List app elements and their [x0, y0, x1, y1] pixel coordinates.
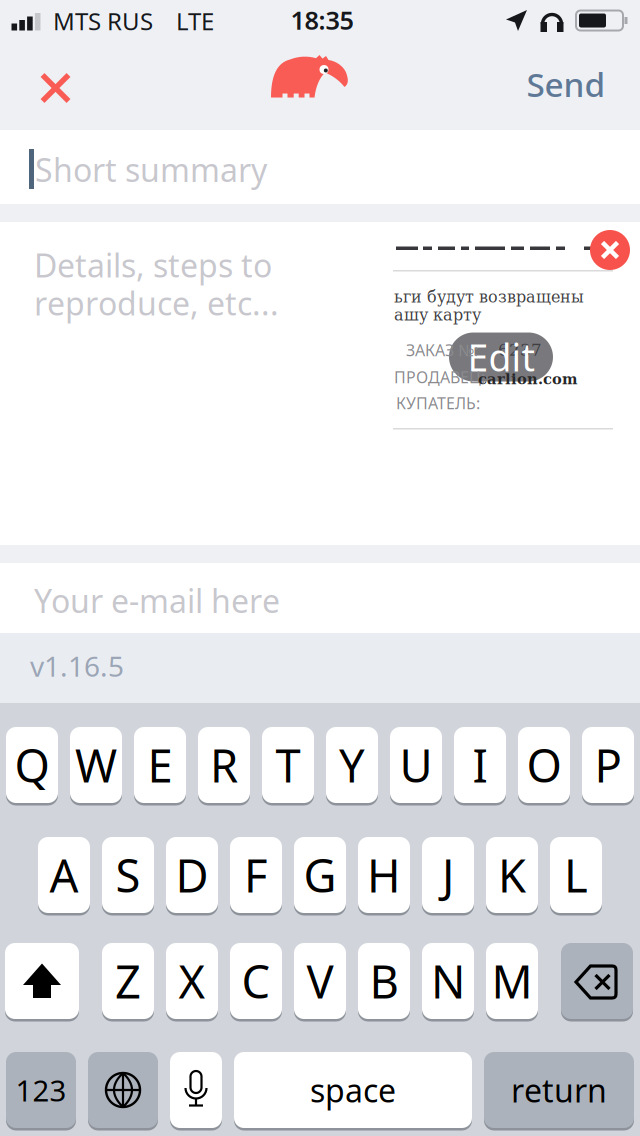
- staticText: F: [244, 845, 268, 905]
- staticText: E: [147, 735, 172, 795]
- button[interactable]: K: [486, 837, 538, 913]
- button[interactable]: E: [134, 727, 186, 803]
- button[interactable]: N: [422, 943, 474, 1019]
- button[interactable]: A: [38, 837, 90, 913]
- button[interactable]: Y: [326, 727, 378, 803]
- staticText: 123: [15, 1070, 66, 1109]
- button[interactable]: Z: [102, 943, 154, 1019]
- button[interactable]: Shift: [5, 943, 79, 1019]
- staticText: B: [369, 951, 398, 1011]
- staticText: Details, steps to: [34, 244, 272, 286]
- button[interactable]: Delete: [561, 943, 633, 1019]
- button[interactable]: V: [294, 943, 346, 1019]
- staticText: 6237: [498, 340, 542, 360]
- staticText: ашу карту: [394, 306, 481, 324]
- staticText: ЗАКАЗ №:: [406, 339, 478, 361]
- staticText: ПРОДАВЕЦ:: [394, 366, 485, 388]
- button[interactable]: I: [454, 727, 506, 803]
- button[interactable]: Short summary: [0, 130, 640, 204]
- staticText: S: [115, 845, 140, 905]
- button[interactable]: space: [234, 1052, 472, 1128]
- staticText: V: [306, 951, 333, 1011]
- staticText: space: [310, 1069, 396, 1111]
- staticText: L: [564, 845, 588, 905]
- staticText: R: [210, 735, 238, 795]
- staticText: N: [431, 951, 465, 1011]
- button[interactable]: S: [102, 837, 154, 913]
- staticText: G: [303, 845, 336, 905]
- staticText: Short summary: [35, 148, 267, 191]
- button[interactable]: O: [518, 727, 570, 803]
- button[interactable]: D: [166, 837, 218, 913]
- button[interactable]: Edit: [449, 332, 553, 381]
- button[interactable]: G: [294, 837, 346, 913]
- button[interactable]: return: [484, 1052, 634, 1128]
- button[interactable]: L: [550, 837, 602, 913]
- staticText: C: [241, 951, 270, 1011]
- staticText: Z: [115, 951, 141, 1011]
- staticText: X: [178, 951, 205, 1011]
- staticText: 18:35: [290, 3, 353, 37]
- button[interactable]: Your e-mail here: [0, 563, 640, 633]
- button[interactable]: B: [358, 943, 410, 1019]
- staticText: H: [367, 845, 401, 905]
- staticText: carlion.com: [478, 370, 578, 388]
- staticText: LTE: [176, 5, 214, 37]
- staticText: J: [442, 845, 454, 905]
- button[interactable]: Remove screenshot: [590, 230, 630, 270]
- staticText: O: [526, 735, 561, 795]
- staticText: v1.16.5: [30, 647, 124, 685]
- staticText: Your e-mail here: [34, 579, 280, 622]
- staticText: reproduce, etc...: [34, 282, 279, 324]
- button[interactable]: H: [358, 837, 410, 913]
- staticText: MTS RUS: [53, 5, 153, 37]
- staticText: A: [49, 845, 78, 905]
- staticText: U: [399, 735, 432, 795]
- staticText: Y: [339, 735, 365, 795]
- staticText: ьги будут возвращены: [394, 288, 584, 306]
- staticText: КУПАТЕЛЬ:: [396, 392, 480, 414]
- staticText: Edit: [467, 332, 534, 382]
- staticText: T: [275, 735, 300, 795]
- button[interactable]: Close: [33, 66, 77, 110]
- button[interactable]: M: [486, 943, 538, 1019]
- button[interactable]: R: [198, 727, 250, 803]
- button[interactable]: Dictate: [170, 1052, 222, 1128]
- button[interactable]: T: [262, 727, 314, 803]
- staticText: D: [175, 845, 208, 905]
- button[interactable]: W: [70, 727, 122, 803]
- staticText: P: [594, 735, 621, 795]
- staticText: W: [75, 735, 117, 795]
- staticText: I: [472, 735, 487, 795]
- button[interactable]: C: [230, 943, 282, 1019]
- staticText: K: [498, 845, 526, 905]
- staticText: Send: [526, 62, 605, 106]
- staticText: Q: [14, 735, 49, 795]
- button[interactable]: X: [166, 943, 218, 1019]
- button[interactable]: 123: [6, 1052, 76, 1128]
- staticText: M: [491, 951, 532, 1011]
- button[interactable]: P: [582, 727, 634, 803]
- button[interactable]: J: [422, 837, 474, 913]
- button[interactable]: Q: [6, 727, 58, 803]
- button[interactable]: Send: [526, 62, 605, 106]
- staticText: return: [511, 1069, 607, 1111]
- button[interactable]: Next keyboard: [88, 1052, 158, 1128]
- button[interactable]: F: [230, 837, 282, 913]
- button[interactable]: U: [390, 727, 442, 803]
